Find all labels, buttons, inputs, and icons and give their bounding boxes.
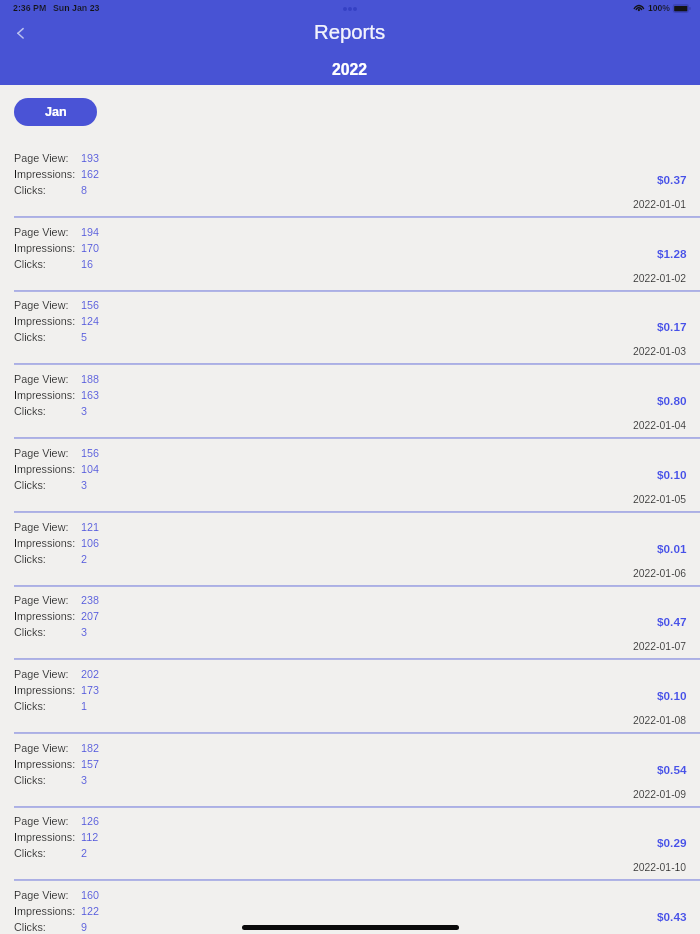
staticText: 5	[81, 331, 88, 343]
staticText: 126	[81, 815, 100, 827]
staticText: 2022-01-08	[633, 715, 687, 727]
staticText: Impressions:	[14, 315, 76, 327]
staticText: 1	[81, 700, 88, 712]
button[interactable]: Page View:	[0, 734, 700, 808]
staticText: 182	[81, 742, 100, 754]
staticText: Impressions:	[14, 242, 76, 254]
staticText: Clicks:	[14, 700, 46, 712]
staticText: 2022-01-03	[633, 346, 687, 358]
staticText: 2022-01-06	[633, 568, 687, 580]
button[interactable]: Page View:	[0, 513, 700, 587]
staticText: Page View:	[14, 594, 69, 606]
staticText: $0.29	[657, 836, 687, 849]
staticText: 106	[81, 537, 100, 549]
staticText: 162	[81, 168, 100, 180]
staticText: Impressions:	[14, 610, 76, 622]
staticText: 124	[81, 315, 100, 327]
staticText: 173	[81, 684, 100, 696]
staticText: 8	[81, 184, 88, 196]
staticText: 160	[81, 889, 100, 901]
staticText: Clicks:	[14, 847, 46, 859]
staticText: 121	[81, 521, 100, 533]
staticText: Impressions:	[14, 168, 76, 180]
button[interactable]: Page View:	[0, 218, 700, 292]
staticText: Page View:	[14, 447, 69, 459]
staticText: Clicks:	[14, 774, 46, 786]
staticText: 2:36 PM	[13, 3, 47, 13]
staticText: $0.54	[657, 763, 687, 776]
staticText: Page View:	[14, 299, 69, 311]
staticText: Clicks:	[14, 479, 46, 491]
staticText: Clicks:	[14, 184, 46, 196]
staticText: 9	[81, 921, 88, 933]
staticText: Impressions:	[14, 537, 76, 549]
staticText: Clicks:	[14, 258, 46, 270]
staticText: 2022-01-02	[633, 273, 687, 285]
staticText: 194	[81, 226, 100, 238]
staticText: Impressions:	[14, 389, 76, 401]
staticText: 193	[81, 152, 100, 164]
staticText: 2022-01-04	[633, 420, 687, 432]
staticText: $0.37	[657, 173, 687, 186]
staticText: 2	[81, 847, 88, 859]
staticText: Page View:	[14, 742, 69, 754]
button[interactable]: Page View:	[0, 807, 700, 881]
staticText: 100%	[648, 3, 670, 13]
button[interactable]: Jan	[14, 98, 97, 126]
button[interactable]: Page View:	[0, 881, 700, 934]
button[interactable]: Page View:	[0, 439, 700, 513]
button[interactable]: Page View:	[0, 586, 700, 660]
staticText: 2022-01-05	[633, 494, 687, 506]
staticText: 157	[81, 758, 100, 770]
staticText: Page View:	[14, 521, 69, 533]
button[interactable]: Page View:	[0, 660, 700, 734]
staticText: 3	[81, 405, 88, 417]
staticText: $0.47	[657, 615, 687, 628]
staticText: 3	[81, 626, 88, 638]
staticText: Impressions:	[14, 684, 76, 696]
staticText: 163	[81, 389, 100, 401]
staticText: 2022-01-09	[633, 789, 687, 801]
staticText: 156	[81, 299, 100, 311]
staticText: 122	[81, 905, 100, 917]
staticText: Page View:	[14, 889, 69, 901]
staticText: Impressions:	[14, 831, 76, 843]
staticText: $0.17	[657, 320, 687, 333]
staticText: 2	[81, 553, 88, 565]
staticText: 104	[81, 463, 100, 475]
staticText: 238	[81, 594, 100, 606]
staticText: Impressions:	[14, 463, 76, 475]
staticText: Impressions:	[14, 905, 76, 917]
staticText: Page View:	[14, 226, 69, 238]
staticText: Clicks:	[14, 331, 46, 343]
staticText: 2022-01-07	[633, 641, 687, 653]
button[interactable]: Page View:	[0, 144, 700, 218]
button[interactable]: Back	[4, 19, 32, 47]
staticText: $1.28	[657, 247, 687, 260]
staticText: Clicks:	[14, 553, 46, 565]
staticText: Reports	[314, 21, 386, 44]
staticText: 2022-01-10	[633, 862, 687, 874]
staticText: Page View:	[14, 815, 69, 827]
staticText: $0.10	[657, 689, 687, 702]
staticText: 188	[81, 373, 100, 385]
staticText: 16	[81, 258, 94, 270]
staticText: Page View:	[14, 152, 69, 164]
staticText: 2022	[332, 61, 368, 79]
staticText: 170	[81, 242, 100, 254]
staticText: 156	[81, 447, 100, 459]
staticText: Clicks:	[14, 626, 46, 638]
staticText: Page View:	[14, 668, 69, 680]
button[interactable]: Page View:	[0, 291, 700, 365]
staticText: Page View:	[14, 373, 69, 385]
staticText: 3	[81, 479, 88, 491]
staticText: 112	[81, 831, 99, 843]
staticText: 3	[81, 774, 88, 786]
staticText: Sun Jan 23	[53, 3, 100, 13]
staticText: Clicks:	[14, 921, 46, 933]
button[interactable]: Page View:	[0, 365, 700, 439]
staticText: 207	[81, 610, 100, 622]
staticText: $0.43	[657, 910, 687, 923]
staticText: $0.10	[657, 468, 687, 481]
staticText: $0.01	[657, 542, 687, 555]
